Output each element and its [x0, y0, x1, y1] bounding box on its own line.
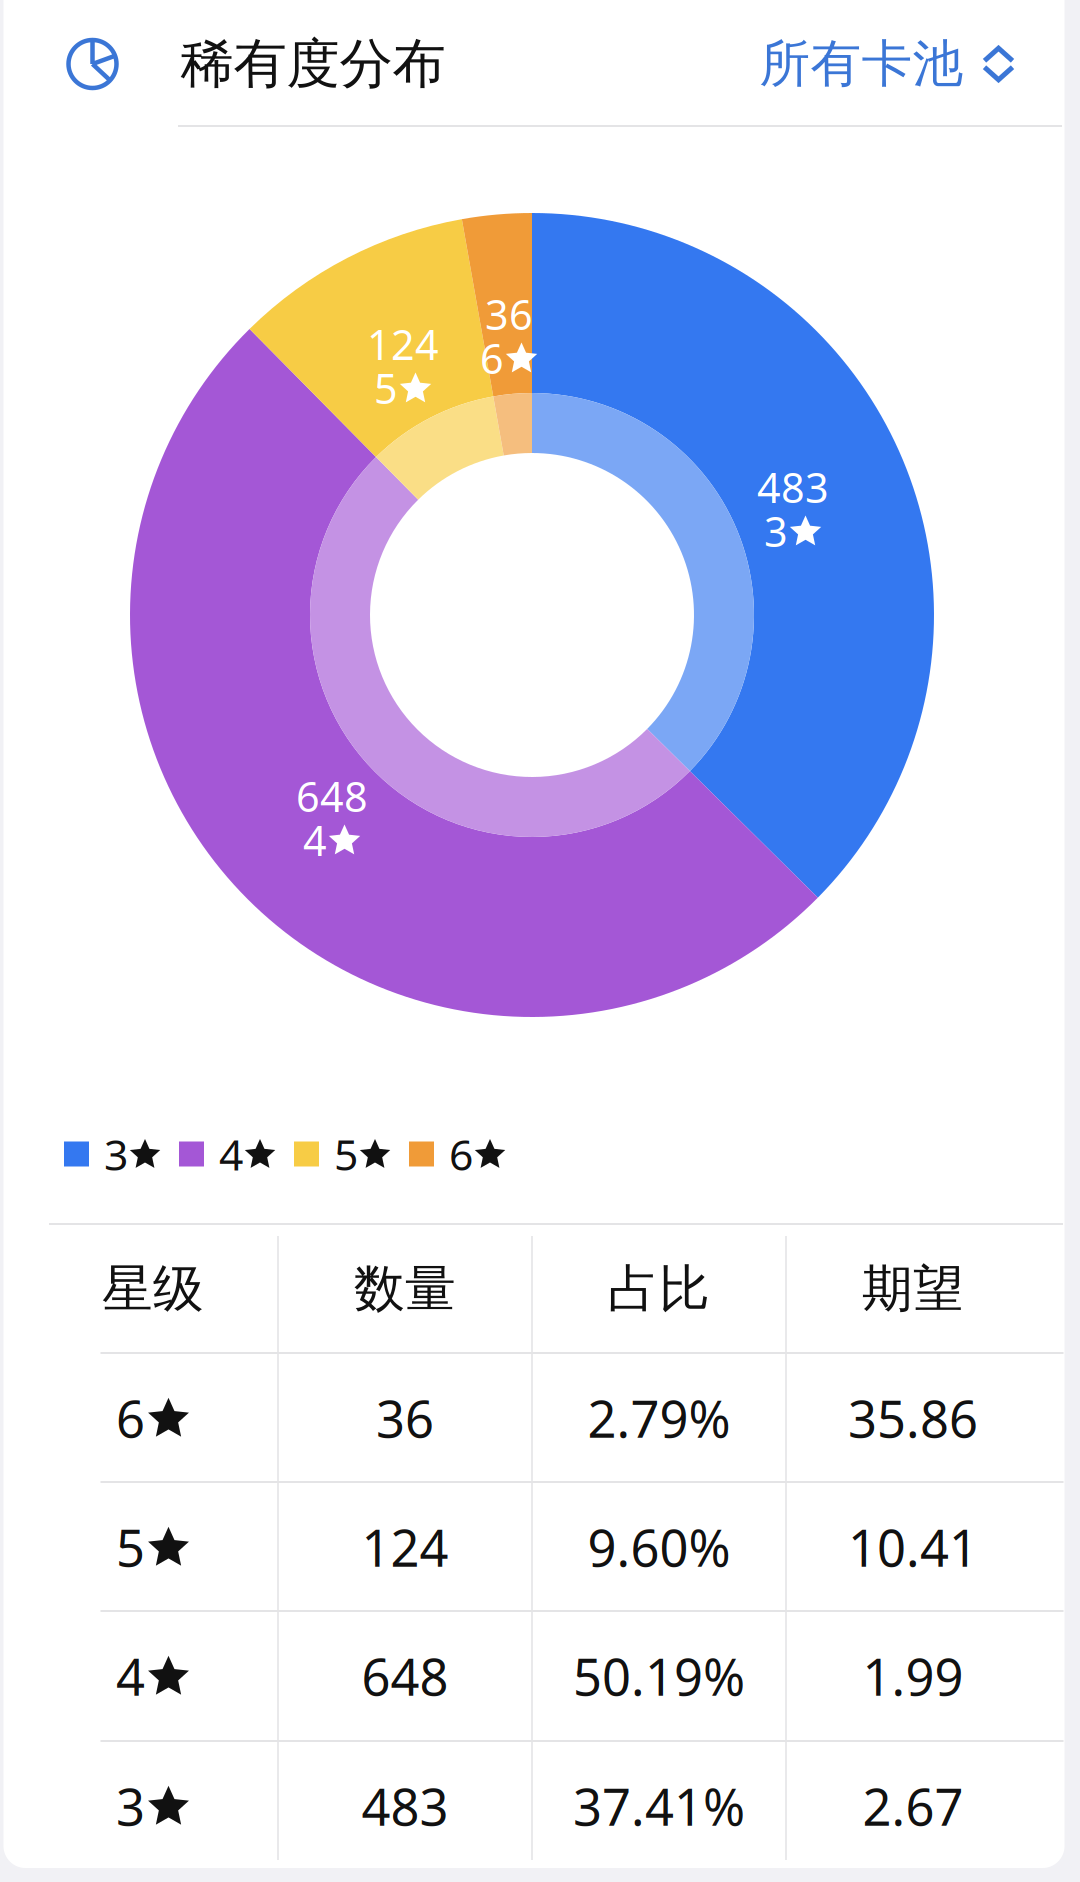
- staticText: 期望: [862, 1258, 964, 1320]
- staticText: 星级: [102, 1258, 204, 1320]
- staticText: 5: [374, 361, 398, 415]
- staticText: 所有卡池: [759, 33, 963, 95]
- staticText: 36: [376, 1384, 434, 1452]
- staticText: 124: [367, 317, 439, 371]
- staticText: 50.19%: [573, 1642, 745, 1710]
- staticText: 124: [361, 1513, 448, 1581]
- staticText: 3: [116, 1772, 145, 1840]
- staticText: 占比: [608, 1258, 710, 1320]
- staticText: 35.86: [848, 1384, 978, 1452]
- staticText: 6: [449, 1126, 473, 1182]
- staticText: 10.41: [848, 1513, 978, 1581]
- staticText: 3: [764, 504, 788, 558]
- staticText: 648: [296, 769, 368, 823]
- staticText: 6: [480, 331, 504, 385]
- staticText: 36: [485, 287, 533, 341]
- button[interactable]: 所有卡池: [741, 19, 1030, 109]
- staticText: 3: [104, 1126, 128, 1182]
- staticText: 稀有度分布: [180, 31, 445, 97]
- staticText: 数量: [354, 1258, 456, 1320]
- staticText: 5: [334, 1126, 358, 1182]
- staticText: 37.41%: [573, 1772, 745, 1840]
- staticText: 9.60%: [587, 1513, 730, 1581]
- staticText: 1.99: [862, 1642, 963, 1710]
- staticText: 5: [116, 1513, 145, 1581]
- staticText: 4: [116, 1642, 145, 1710]
- staticText: 2.79%: [587, 1384, 730, 1452]
- staticText: 4: [219, 1126, 243, 1182]
- staticText: 2.67: [862, 1772, 963, 1840]
- staticText: 4: [303, 813, 327, 867]
- staticText: 483: [757, 460, 829, 514]
- staticText: 6: [116, 1384, 145, 1452]
- staticText: 648: [361, 1642, 448, 1710]
- staticText: 483: [361, 1772, 448, 1840]
